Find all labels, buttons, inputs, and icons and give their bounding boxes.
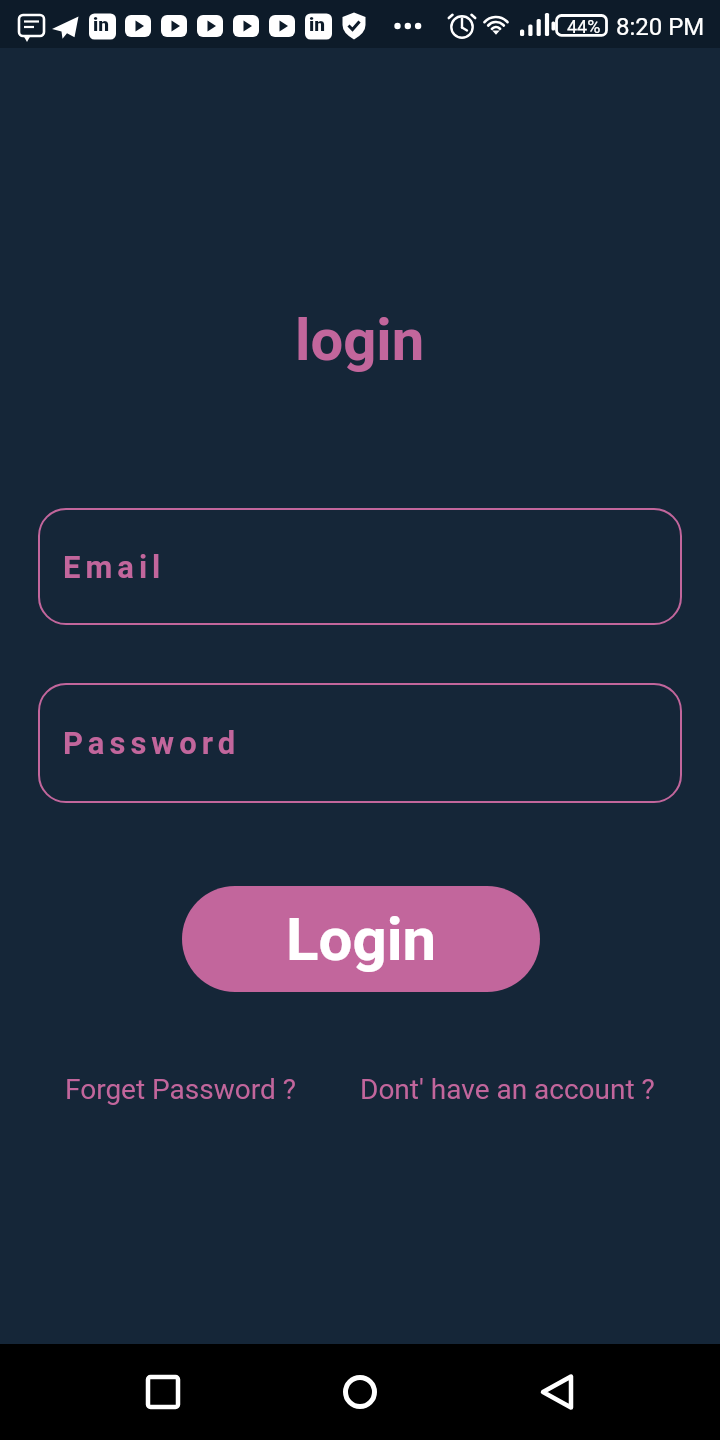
staticText: Login [286,904,437,974]
button[interactable]: Dont' have an account ? [360,1073,655,1106]
button[interactable]: Email [38,508,682,625]
staticText: 8:20 PM [616,13,705,41]
button[interactable]: Login [182,886,540,992]
staticText: 44% [567,16,601,37]
button[interactable]: Password [38,683,682,803]
staticText: login [295,306,425,374]
staticText: in [93,13,109,35]
staticText: in [309,13,325,35]
button[interactable]: Forget Password ? [65,1073,296,1106]
button[interactable] [535,1370,579,1414]
button[interactable] [338,1370,382,1414]
staticText: Password [63,725,241,761]
button[interactable] [141,1370,185,1414]
staticText: Email [63,549,166,585]
